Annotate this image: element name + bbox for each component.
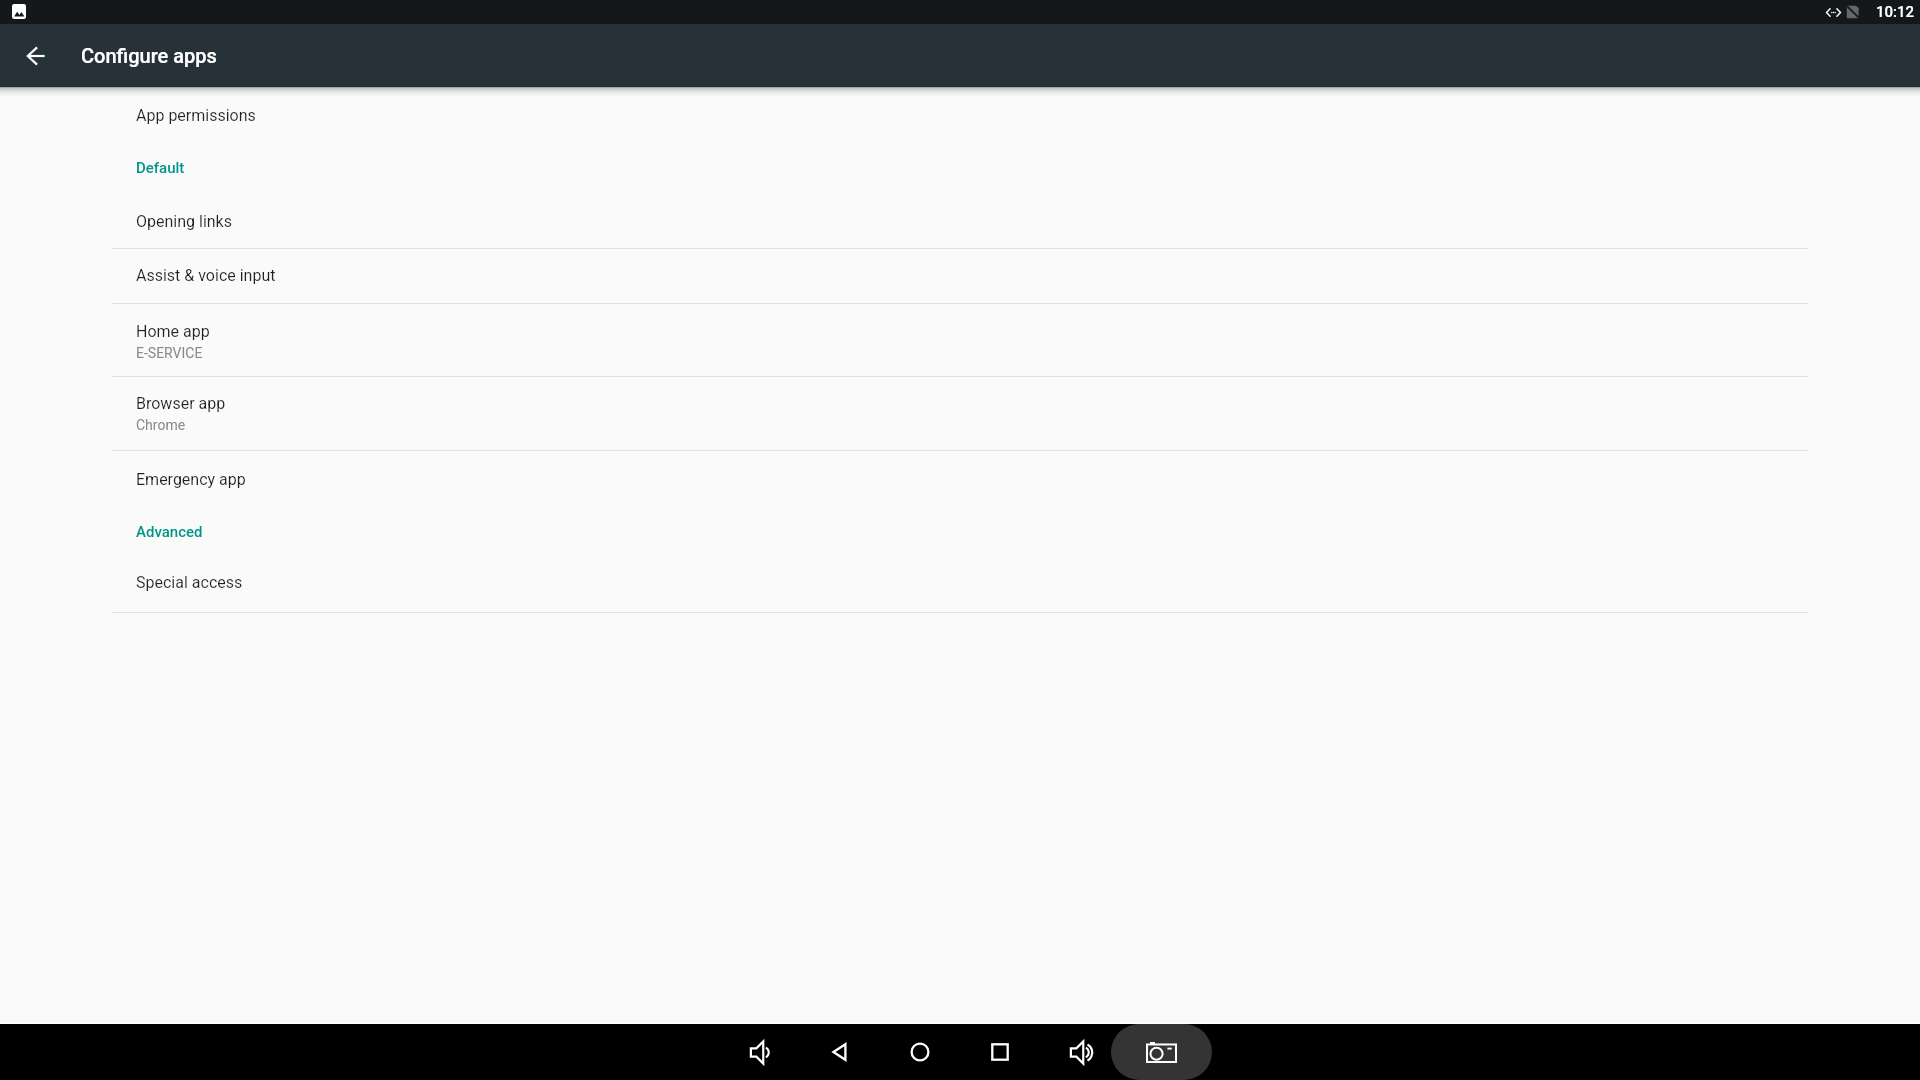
button[interactable]: Back [812,1024,868,1080]
button[interactable]: Volume down [732,1024,788,1080]
staticText: Configure apps [81,44,217,67]
staticText: Opening links [136,212,232,231]
button[interactable]: Browser app, Chrome [0,376,1920,450]
button[interactable]: Volume up [1052,1024,1108,1080]
staticText: Chrome [136,417,186,433]
staticText: Default [136,159,185,177]
button[interactable]: Opening links [0,193,1920,248]
staticText: App permissions [136,106,256,125]
staticText: Special access [136,573,243,592]
button[interactable]: Home app, E-SERVICE [0,303,1920,376]
staticText: Advanced [136,523,203,541]
staticText: Assist & voice input [136,266,276,285]
staticText: E-SERVICE [136,345,203,361]
button[interactable]: Navigate up [4,24,67,87]
button[interactable]: Take screenshot [1111,1024,1212,1080]
button[interactable]: App permissions [0,93,1920,148]
staticText: Emergency app [136,470,246,489]
button[interactable]: Recent apps [972,1024,1028,1080]
button[interactable]: Emergency app [0,450,1920,505]
button[interactable]: Home [892,1024,948,1080]
staticText: 10:12 [1876,3,1915,21]
staticText: Home app [136,322,210,341]
staticText: Browser app [136,394,226,413]
button[interactable]: Special access [0,557,1920,612]
button[interactable]: Assist & voice input [0,248,1920,303]
